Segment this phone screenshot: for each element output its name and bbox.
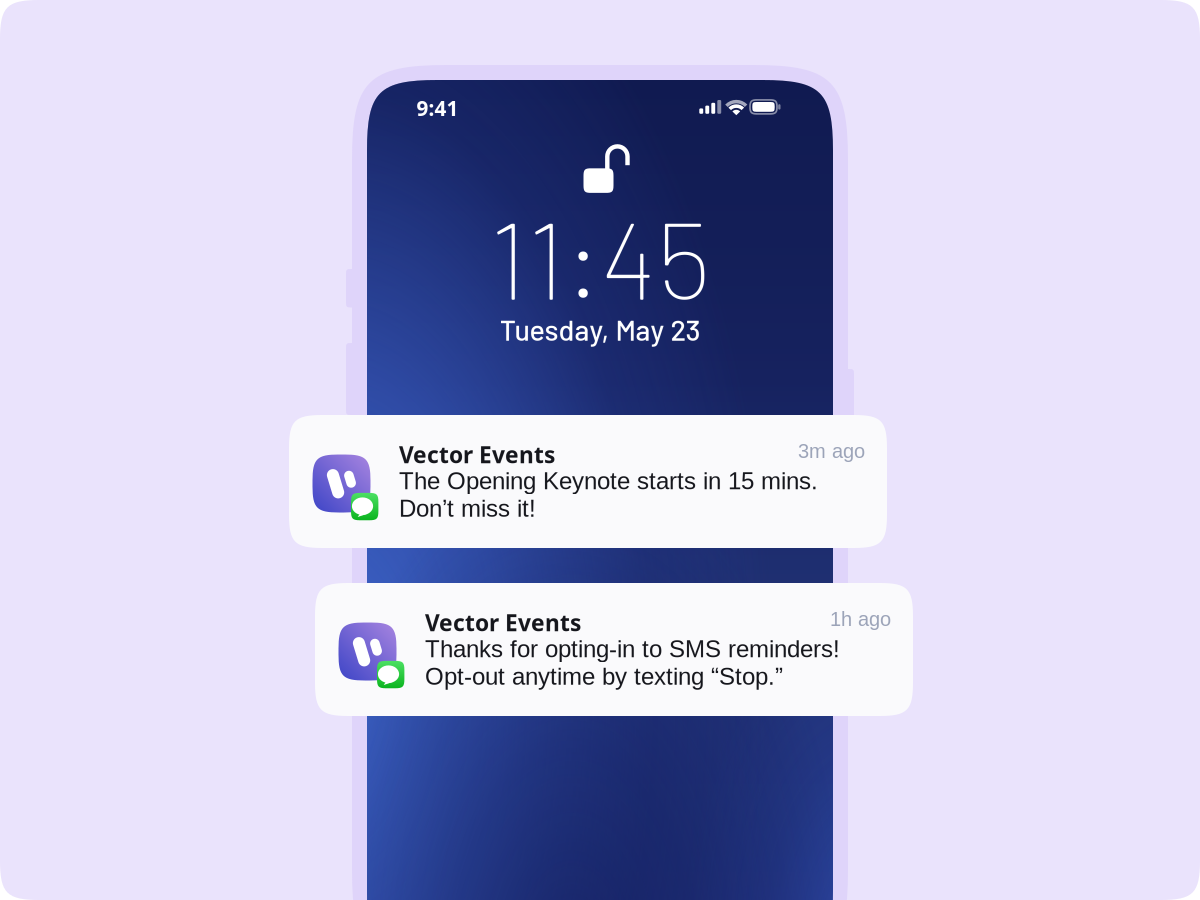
button[interactable]: Vector Events [315,583,913,716]
button[interactable]: Vector Events [289,415,887,548]
staticText: Vector Events [399,439,555,470]
staticText: Tuesday, May 23 [499,312,700,346]
staticText: 11:45 [489,191,710,321]
staticText: Opt-out anytime by texting “Stop.” [425,663,783,690]
staticText: Thanks for opting-in to SMS reminders! [425,635,840,662]
staticText: 9:41 [416,94,458,122]
staticText: Don’t miss it! [399,495,536,522]
staticText: The Opening Keynote starts in 15 mins. [399,467,818,494]
staticText: 3m ago [798,440,865,462]
staticText: 1h ago [830,608,891,630]
staticText: Vector Events [425,607,581,638]
